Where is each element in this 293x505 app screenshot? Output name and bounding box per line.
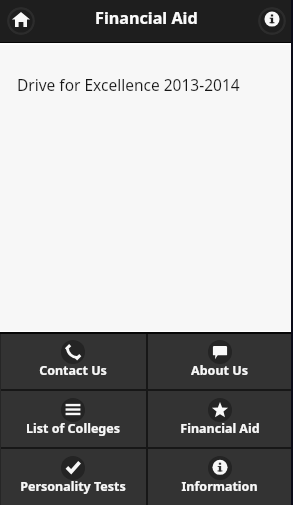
staticText: Financial Aid	[95, 7, 198, 29]
staticText: About Us	[191, 362, 248, 379]
staticText: Information	[181, 478, 258, 495]
staticText: Personality Tests	[20, 478, 126, 495]
staticText: Drive for Excellence 2013-2014	[17, 74, 240, 95]
staticText: List of Colleges	[26, 420, 120, 437]
button[interactable]: Financial Aid	[146, 391, 293, 447]
button[interactable]: Information	[258, 7, 286, 35]
button[interactable]: Information	[146, 449, 293, 505]
button[interactable]: Personality Tests	[0, 449, 146, 505]
button[interactable]: List of Colleges	[0, 391, 146, 447]
button[interactable]: Contact Us	[0, 334, 146, 389]
button[interactable]: Home	[7, 7, 35, 35]
staticText: Financial Aid	[180, 420, 260, 437]
staticText: Contact Us	[39, 362, 107, 379]
button[interactable]: About Us	[146, 334, 293, 389]
